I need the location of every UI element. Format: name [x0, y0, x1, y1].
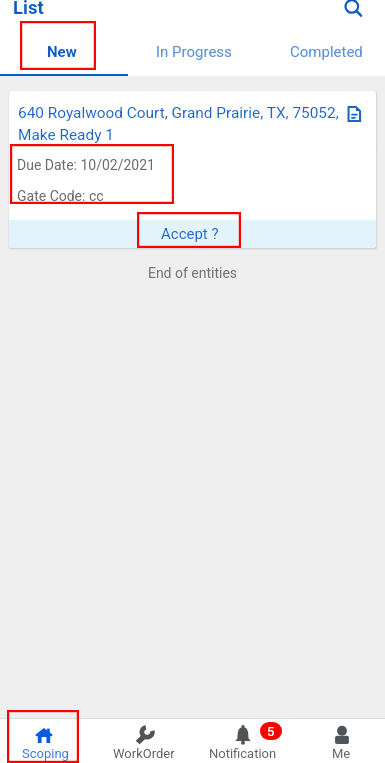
staticText: New	[47, 43, 77, 61]
button[interactable]: New	[0, 28, 128, 76]
staticText: Notification	[209, 746, 277, 761]
staticText: Completed	[290, 43, 363, 61]
button[interactable]: Accept ?	[9, 220, 376, 248]
staticText: Accept ?	[161, 225, 219, 243]
staticText: List	[13, 0, 44, 19]
button[interactable]: Open document	[345, 105, 363, 123]
button[interactable]: WorkOrder	[95, 718, 193, 763]
button[interactable]: Completed	[260, 28, 385, 76]
staticText: Me	[332, 746, 351, 761]
staticText: 5	[267, 724, 275, 739]
button[interactable]: Scoping	[0, 718, 95, 763]
staticText: 640 Royalwood Court, Grand Prairie, TX, …	[18, 104, 345, 144]
staticText: End of entities	[0, 265, 385, 281]
button[interactable]: Me	[292, 718, 385, 763]
staticText: Due Date: 10/02/2021	[17, 157, 155, 173]
staticText: Scoping	[22, 746, 69, 761]
button[interactable]: In Progress	[128, 28, 260, 76]
staticText: In Progress	[156, 43, 232, 61]
button[interactable]: 5	[193, 718, 292, 763]
staticText: WorkOrder	[113, 746, 175, 761]
staticText: Gate Code: cc	[17, 188, 104, 204]
button[interactable]: Search	[341, 0, 365, 20]
